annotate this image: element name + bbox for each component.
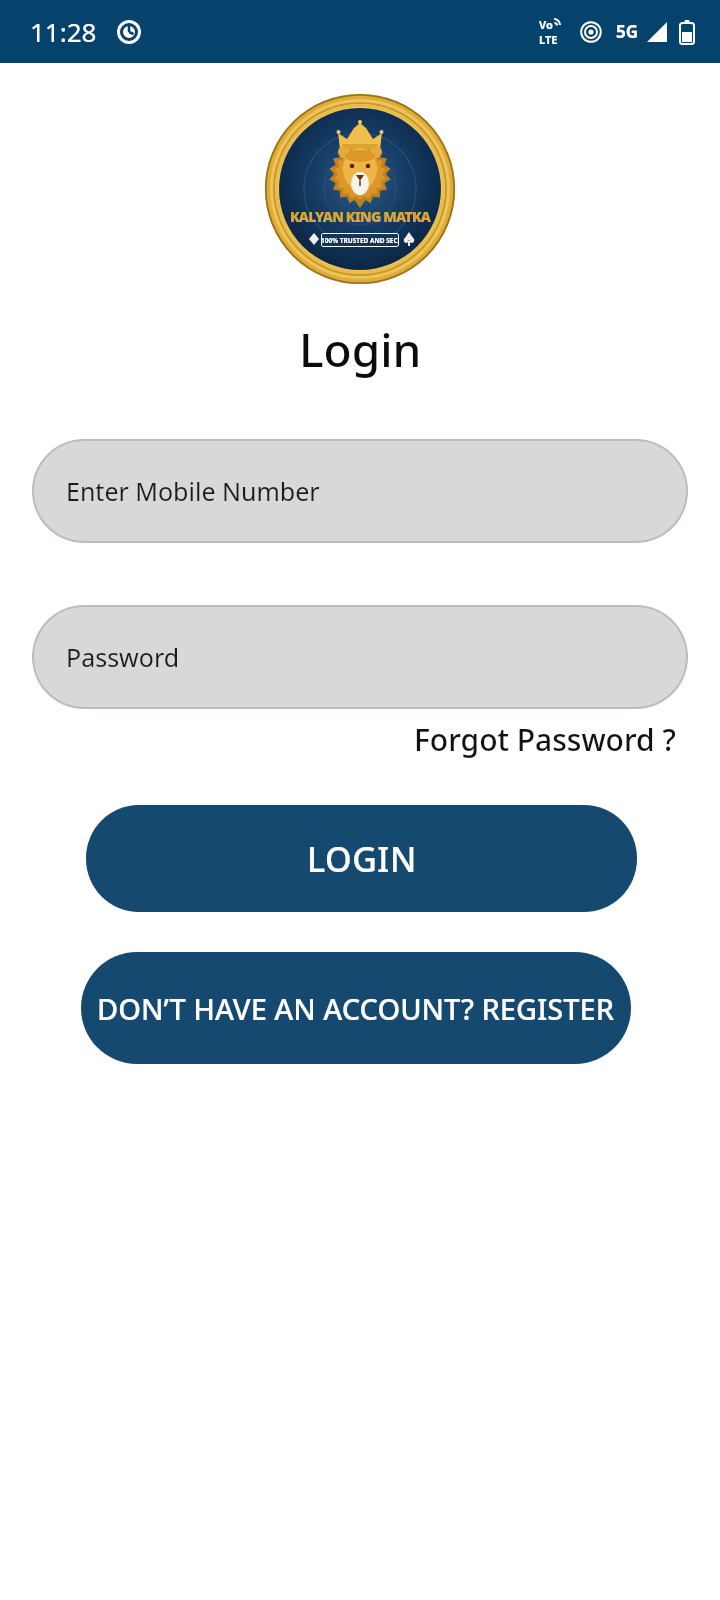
staticText: 11:28 <box>30 14 97 49</box>
button[interactable]: Forgot Password ? <box>414 719 676 760</box>
button[interactable]: Password <box>32 605 688 709</box>
staticText: 5G <box>616 20 639 43</box>
staticText: DON’T HAVE AN ACCOUNT? REGISTER <box>97 989 615 1028</box>
staticText: LOGIN <box>307 836 417 882</box>
button[interactable]: DON’T HAVE AN ACCOUNT? REGISTER <box>81 952 631 1064</box>
staticText: Vo <box>539 17 553 32</box>
staticText: Login <box>299 318 422 381</box>
staticText: 100% TRUSTED AND SECURE <box>321 236 399 245</box>
staticText: KALYAN KING MATKA <box>290 207 431 226</box>
staticText: LTE <box>539 32 558 47</box>
button[interactable]: Enter Mobile Number <box>32 439 688 543</box>
button[interactable]: LOGIN <box>86 805 637 912</box>
staticText: Password <box>66 640 180 674</box>
staticText: Enter Mobile Number <box>66 474 320 508</box>
